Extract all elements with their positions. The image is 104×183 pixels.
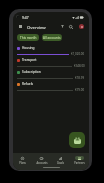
staticText: Refuels [22,82,33,86]
staticText: €79.00 [75,88,85,92]
button[interactable]: Add transaction [69,132,85,148]
staticText: €348.00 [74,64,85,68]
staticText: All accounts [43,36,61,40]
button[interactable]: Subscription [13,68,89,80]
staticText: Housing [22,46,35,50]
button[interactable]: Partners [70,154,89,167]
button[interactable]: Plans [13,154,32,167]
button[interactable]: All accounts [42,34,62,41]
staticText: €1,020.00 [71,52,85,56]
button[interactable]: Refuels [13,80,89,92]
staticText: Plans [19,161,26,165]
button[interactable]: Transport [13,56,89,68]
staticText: Partners [74,161,85,165]
staticText: Accounts [36,161,48,165]
staticText: Overview [27,24,46,30]
button[interactable]: Accounts [32,154,51,167]
staticText: 9:47 [22,15,29,19]
button[interactable]: Goals [51,154,70,167]
staticText: Subscription [22,70,41,74]
button[interactable]: Profile [79,24,84,29]
button[interactable]: Housing [13,44,89,56]
button[interactable]: Menu [17,23,23,29]
button[interactable]: This month [17,34,39,41]
button[interactable]: Search [67,23,74,30]
staticText: Goals [57,161,64,165]
button[interactable]: Filter [59,23,66,30]
staticText: This month [20,36,37,40]
staticText: Transport [22,58,37,62]
staticText: €18.99 [75,76,85,80]
